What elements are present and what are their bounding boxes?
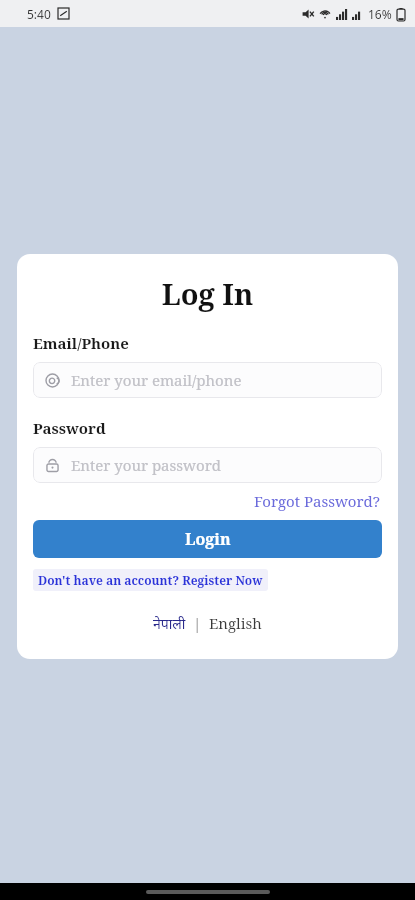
staticText: Log In xyxy=(33,274,382,313)
staticText: Forgot Password? xyxy=(254,491,380,511)
staticText: | xyxy=(189,613,206,633)
button[interactable]: नेपाली xyxy=(150,612,189,635)
staticText: Password xyxy=(33,418,106,438)
staticText: English xyxy=(209,613,262,633)
button[interactable]: Don't have an account? Register Now xyxy=(33,569,268,591)
button[interactable]: English xyxy=(206,611,265,635)
button[interactable]: Forgot Password? xyxy=(252,490,382,512)
staticText: Enter your email/phone xyxy=(71,370,242,390)
button[interactable]: Password xyxy=(33,447,382,483)
staticText: 5:40 xyxy=(27,6,51,22)
staticText: 16% xyxy=(368,6,392,22)
staticText: Don't have an account? Register Now xyxy=(38,572,263,588)
staticText: Login xyxy=(185,528,231,550)
button[interactable]: Email xyxy=(33,362,382,398)
staticText: Email/Phone xyxy=(33,333,129,353)
other: Password xyxy=(45,458,60,473)
staticText: नेपाली xyxy=(153,614,186,633)
button[interactable]: Login xyxy=(33,520,382,558)
staticText: Enter your password xyxy=(71,455,221,475)
other: Email xyxy=(45,373,60,388)
